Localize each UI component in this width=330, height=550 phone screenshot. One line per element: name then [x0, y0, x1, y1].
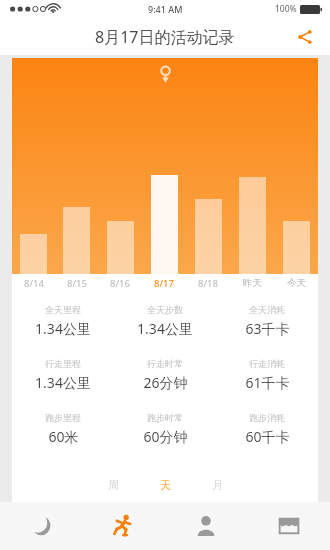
staticText: 8月17日的活动记录	[95, 26, 235, 48]
staticText: 1.34公里	[35, 319, 91, 338]
button[interactable]	[55, 58, 98, 274]
staticText: 60米	[48, 427, 79, 446]
staticText: 1.34公里	[35, 373, 91, 392]
button[interactable]: 全天里程	[12, 304, 114, 338]
button[interactable]: 分享	[288, 20, 322, 54]
staticText: 全天里程	[45, 304, 81, 315]
staticText: 跑步里程	[45, 412, 81, 423]
staticText: 天	[160, 478, 171, 492]
staticText: 100%	[275, 3, 297, 15]
staticText: 8/18	[198, 277, 218, 290]
staticText: 跑步时常	[147, 412, 183, 423]
button[interactable]	[274, 58, 318, 274]
button[interactable]	[142, 58, 186, 274]
button[interactable]: 周	[87, 472, 139, 498]
staticText: 60千卡	[245, 427, 290, 446]
staticText: 8/17	[154, 277, 174, 290]
staticText: 行走消耗	[249, 358, 285, 369]
button[interactable]: 月	[191, 472, 243, 498]
staticText: 今天	[287, 277, 306, 289]
button[interactable]: 行走时常	[114, 358, 216, 392]
staticText: 周	[108, 478, 119, 492]
button[interactable]	[12, 58, 55, 274]
button[interactable]: 全天步数	[114, 304, 216, 338]
staticText: 8/16	[110, 277, 130, 290]
staticText: 8/15	[67, 277, 87, 290]
button[interactable]: 跑步消耗	[216, 412, 318, 446]
staticText: 全天步数	[147, 304, 183, 315]
staticText: 昨天	[243, 277, 262, 289]
staticText: 行走里程	[45, 358, 81, 369]
staticText: 63千卡	[245, 319, 290, 338]
button[interactable]: 行走里程	[12, 358, 114, 392]
staticText: 行走时常	[147, 358, 183, 369]
button[interactable]	[98, 58, 142, 274]
button[interactable]: 天	[139, 472, 191, 498]
button[interactable]: 运动	[82, 502, 164, 550]
button[interactable]: 行走消耗	[216, 358, 318, 392]
button[interactable]: 商城	[247, 502, 330, 550]
button[interactable]: 睡眠	[0, 502, 82, 550]
staticText: 1.34公里	[137, 319, 193, 338]
staticText: 26分钟	[143, 373, 188, 392]
staticText: 9:41 AM	[148, 3, 183, 15]
button[interactable]: 全天消耗	[216, 304, 318, 338]
staticText: 全天消耗	[249, 304, 285, 315]
staticText: 60分钟	[143, 427, 188, 446]
button[interactable]: 我的	[164, 502, 247, 550]
staticText: 跑步消耗	[249, 412, 285, 423]
staticText: 8/14	[24, 277, 44, 290]
staticText: 61千卡	[245, 373, 290, 392]
button[interactable]: 跑步时常	[114, 412, 216, 446]
button[interactable]: 跑步里程	[12, 412, 114, 446]
staticText: 月	[212, 478, 223, 492]
button[interactable]	[186, 58, 230, 274]
button[interactable]	[230, 58, 274, 274]
